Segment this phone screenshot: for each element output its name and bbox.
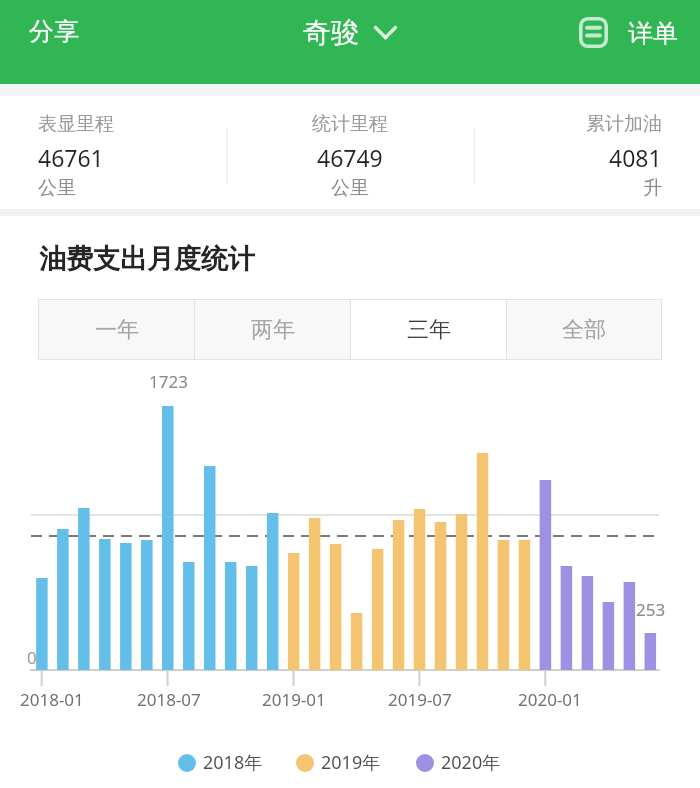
button[interactable]: 分享 bbox=[14, 6, 94, 56]
staticText: 2018年 bbox=[203, 750, 263, 775]
button[interactable]: 全部 bbox=[507, 300, 661, 359]
staticText: 2019-01 bbox=[262, 688, 326, 711]
button[interactable]: 2019年 bbox=[287, 750, 382, 776]
button[interactable]: 三年 bbox=[351, 300, 506, 359]
staticText: 2019年 bbox=[321, 750, 381, 775]
staticText: 公里 bbox=[38, 176, 76, 200]
button[interactable]: 2020年 bbox=[407, 750, 502, 776]
staticText: 2020-01 bbox=[518, 688, 582, 711]
staticText: 0 bbox=[27, 646, 37, 669]
button[interactable]: 一年 bbox=[39, 300, 194, 359]
staticText: 46749 bbox=[317, 142, 383, 173]
staticText: 2018-01 bbox=[20, 688, 84, 711]
staticText: 分享 bbox=[29, 16, 79, 47]
staticText: 1723 bbox=[149, 370, 188, 393]
staticText: 一年 bbox=[95, 316, 139, 344]
staticText: 统计里程 bbox=[312, 112, 388, 136]
staticText: 奇骏 bbox=[303, 15, 359, 50]
staticText: 累计加油 bbox=[586, 112, 662, 136]
staticText: 三年 bbox=[407, 316, 451, 344]
staticText: 全部 bbox=[562, 316, 606, 344]
staticText: 表显里程 bbox=[38, 112, 114, 136]
staticText: 升 bbox=[643, 176, 662, 200]
staticText: 2019-07 bbox=[388, 688, 452, 711]
button[interactable]: 两年 bbox=[195, 300, 350, 359]
staticText: 4081 bbox=[609, 142, 662, 173]
staticText: 两年 bbox=[251, 316, 295, 344]
staticText: 公里 bbox=[331, 176, 369, 200]
staticText: 2020年 bbox=[441, 750, 501, 775]
button[interactable]: 详单 bbox=[570, 6, 690, 58]
staticText: 253 bbox=[636, 598, 666, 621]
button[interactable]: 2018年 bbox=[169, 750, 264, 776]
staticText: 46761 bbox=[38, 142, 104, 173]
staticText: 2018-07 bbox=[137, 688, 201, 711]
staticText: 油费支出月度统计 bbox=[39, 242, 255, 276]
staticText: 详单 bbox=[628, 18, 678, 49]
button[interactable]: 奇骏 bbox=[295, 6, 405, 56]
